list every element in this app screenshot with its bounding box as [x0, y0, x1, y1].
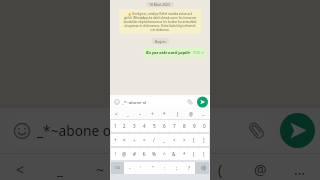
button[interactable]: :: [159, 162, 171, 174]
button[interactable]: /: [149, 134, 159, 146]
staticText: (: [177, 111, 179, 117]
button[interactable]: ~: [80, 153, 120, 180]
button[interactable]: @: [120, 148, 129, 160]
button[interactable]: *: [160, 153, 200, 180]
button[interactable]: ): [199, 148, 209, 160]
staticText: <: [115, 111, 118, 117]
button[interactable]: (: [189, 148, 199, 160]
button[interactable]: 3: [129, 120, 139, 132]
staticText: /: [153, 137, 155, 143]
button[interactable]: Emoji: [5, 113, 276, 148]
button[interactable]: 7: [169, 120, 179, 132]
staticText: @: [122, 151, 127, 157]
staticText: _: [127, 111, 129, 117]
button[interactable]: *: [179, 148, 189, 160]
button[interactable]: 9: [189, 120, 199, 132]
staticText: (: [218, 160, 223, 179]
button[interactable]: 0: [199, 120, 209, 132]
staticText: &: [172, 151, 176, 157]
button[interactable]: ~: [134, 109, 146, 119]
button[interactable]: ÷: [129, 134, 139, 146]
other: Attach file: [187, 99, 193, 105]
staticText: *: [176, 160, 184, 179]
staticText: 9: [193, 123, 196, 129]
staticText: @: [254, 160, 267, 179]
staticText: 4: [143, 123, 146, 129]
staticText: …: [294, 160, 306, 179]
staticText: *: [183, 151, 186, 157]
button[interactable]: ₺: [139, 148, 149, 160]
button[interactable]: <: [110, 109, 122, 119]
staticText: 2: [123, 123, 126, 129]
staticText: =: [143, 137, 146, 143]
button[interactable]: 8: [179, 120, 189, 132]
button[interactable]: 1/2: [111, 162, 124, 174]
staticText: _: [57, 160, 64, 179]
button[interactable]: Bu yaz aski nasil yapilir: [143, 48, 206, 57]
button[interactable]: _: [159, 134, 169, 146]
staticText: 21:16: [193, 51, 200, 55]
button[interactable]: %: [149, 148, 159, 160]
button[interactable]: (: [200, 153, 240, 180]
button[interactable]: =: [139, 134, 149, 146]
button[interactable]: +: [111, 134, 120, 146]
button[interactable]: 2: [120, 120, 129, 132]
staticText: (: [193, 151, 195, 157]
button[interactable]: +: [146, 109, 158, 119]
button[interactable]: ": [147, 162, 159, 174]
staticText: _*~abone ol: [122, 99, 147, 105]
button[interactable]: *: [158, 109, 171, 119]
button[interactable]: ^: [159, 148, 169, 160]
staticText: ": [152, 165, 154, 171]
staticText: …: [202, 111, 206, 117]
button[interactable]: <: [0, 153, 40, 180]
button[interactable]: &: [169, 148, 179, 160]
staticText: ): [203, 151, 205, 157]
staticText: ^: [163, 151, 166, 157]
staticText: 1: [114, 123, 117, 129]
button[interactable]: Backspace: [195, 162, 209, 174]
button[interactable]: -: [124, 162, 135, 174]
button[interactable]: 🔒 Kimliginiz, simdiye (Sifre) nasilda si…: [119, 9, 201, 34]
staticText: Bu yaz aski nasil yapilir: [146, 50, 191, 55]
staticText: +: [136, 160, 145, 179]
button[interactable]: <: [169, 134, 179, 146]
button[interactable]: ': [135, 162, 147, 174]
staticText: ?: [188, 165, 190, 171]
button[interactable]: >: [179, 134, 189, 146]
button[interactable]: …: [280, 153, 320, 180]
button[interactable]: …: [197, 109, 210, 119]
button[interactable]: @: [240, 153, 280, 180]
button[interactable]: @: [184, 109, 197, 119]
button[interactable]: 6: [159, 120, 169, 132]
button[interactable]: ;: [171, 162, 183, 174]
staticText: _: [163, 137, 166, 143]
button[interactable]: 5: [149, 120, 159, 132]
button[interactable]: 1: [111, 120, 120, 132]
button[interactable]: #: [129, 148, 139, 160]
button[interactable]: Emoji: [112, 97, 196, 107]
staticText: ~: [96, 160, 105, 179]
button[interactable]: [: [189, 134, 199, 146]
button[interactable]: Send: [197, 97, 208, 107]
button[interactable]: ×: [120, 134, 129, 146]
staticText: >: [183, 137, 186, 143]
button[interactable]: (: [171, 109, 184, 119]
staticText: Bugün: [155, 39, 166, 44]
button[interactable]: +: [120, 153, 160, 180]
staticText: 7: [173, 123, 176, 129]
button[interactable]: ?: [183, 162, 195, 174]
other: Backspace: [199, 166, 205, 170]
staticText: :: [164, 165, 166, 171]
button[interactable]: _: [40, 153, 80, 180]
staticText: ;: [176, 165, 178, 171]
button[interactable]: Send: [280, 113, 315, 148]
button[interactable]: 4: [139, 120, 149, 132]
staticText: 0: [203, 123, 206, 129]
staticText: #: [133, 151, 136, 157]
button[interactable]: !: [111, 148, 120, 160]
button[interactable]: ]: [199, 134, 209, 146]
staticText: -: [129, 165, 131, 171]
staticText: 1/2: [115, 166, 120, 170]
button[interactable]: _: [122, 109, 134, 119]
